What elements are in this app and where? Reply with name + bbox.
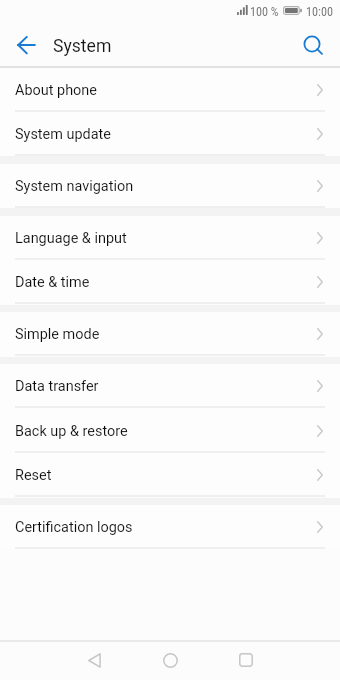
staticText: System update (15, 126, 111, 143)
staticText: Data transfer (15, 378, 99, 395)
button[interactable]: Back up & restore (0, 409, 340, 453)
button[interactable]: Home (150, 640, 190, 680)
button[interactable]: Reset (0, 453, 340, 497)
button[interactable]: System navigation (0, 164, 340, 208)
staticText: Date & time (15, 274, 90, 291)
button[interactable]: System update (0, 112, 340, 156)
button[interactable]: Data transfer (0, 364, 340, 408)
button[interactable]: Back (6, 24, 46, 64)
button[interactable]: Certification logos (0, 505, 340, 549)
staticText: Certification logos (15, 519, 133, 536)
staticText: 10:00 (306, 5, 333, 19)
staticText: 100 % (250, 5, 279, 19)
button[interactable]: About phone (0, 68, 340, 112)
button[interactable]: Search (292, 24, 332, 64)
button[interactable]: Language & input (0, 216, 340, 260)
button[interactable]: Date & time (0, 260, 340, 304)
staticText: Simple mode (15, 326, 100, 343)
staticText: System navigation (15, 178, 134, 195)
staticText: Reset (15, 467, 52, 484)
button[interactable]: Simple mode (0, 312, 340, 356)
staticText: Language & input (15, 230, 127, 247)
button[interactable]: Recent apps (226, 640, 266, 680)
staticText: System (53, 36, 112, 57)
button[interactable]: Back (74, 640, 114, 680)
staticText: About phone (15, 82, 97, 99)
staticText: Back up & restore (15, 423, 128, 440)
